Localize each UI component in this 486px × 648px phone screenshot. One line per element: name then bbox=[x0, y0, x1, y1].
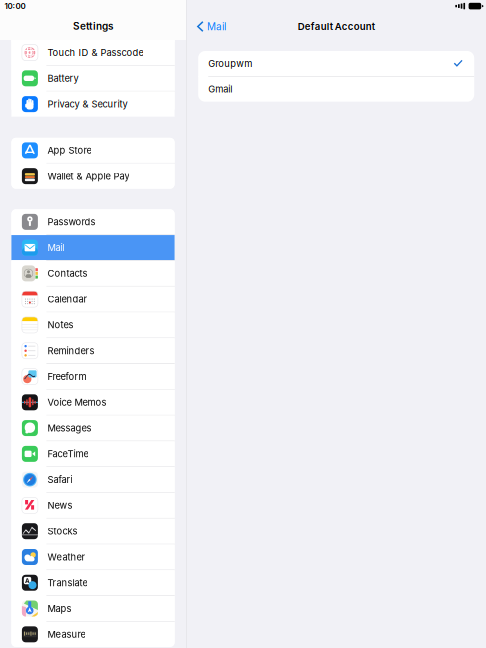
button[interactable]: Contacts bbox=[11, 261, 175, 286]
button[interactable]: Stocks bbox=[11, 519, 175, 544]
button[interactable]: Notes bbox=[11, 312, 175, 337]
staticText: Translate bbox=[47, 577, 87, 588]
staticText: Safari bbox=[47, 474, 72, 485]
staticText: Gmail bbox=[208, 84, 232, 95]
staticText: Battery bbox=[47, 73, 78, 84]
staticText: App Store bbox=[47, 145, 91, 156]
staticText: 10:00 bbox=[4, 1, 25, 11]
staticText: Reminders bbox=[47, 345, 94, 356]
button[interactable]: Passwords bbox=[11, 209, 175, 234]
staticText: FaceTime bbox=[47, 448, 88, 459]
button[interactable]: Touch ID & Passcode bbox=[11, 40, 175, 65]
staticText: Contacts bbox=[47, 268, 87, 279]
button[interactable]: Maps bbox=[11, 596, 175, 621]
button[interactable]: News bbox=[11, 493, 175, 518]
staticText: Passwords bbox=[47, 216, 95, 227]
staticText: Freeform bbox=[47, 371, 86, 382]
staticText: News bbox=[47, 500, 72, 511]
staticText: Maps bbox=[47, 603, 71, 614]
button[interactable]: Weather bbox=[11, 544, 175, 569]
button[interactable]: Measure bbox=[11, 622, 175, 647]
staticText: Mail bbox=[47, 242, 64, 253]
staticText: A bbox=[25, 576, 30, 585]
staticText: Privacy & Security bbox=[47, 98, 127, 110]
button[interactable]: Safari bbox=[11, 467, 175, 492]
button[interactable]: Mail bbox=[11, 235, 175, 260]
button[interactable]: Wallet & Apple Pay bbox=[11, 164, 175, 189]
button[interactable]: Gmail bbox=[198, 77, 474, 102]
staticText: Notes bbox=[47, 319, 73, 331]
button[interactable]: Messages bbox=[11, 415, 175, 441]
button[interactable]: Reminders bbox=[11, 338, 175, 363]
staticText: Calendar bbox=[47, 293, 87, 305]
staticText: Weather bbox=[47, 551, 85, 563]
button[interactable]: Battery bbox=[11, 66, 175, 91]
staticText: Settings bbox=[73, 20, 113, 32]
button[interactable]: FaceTime bbox=[11, 441, 175, 466]
staticText: Wallet & Apple Pay bbox=[47, 170, 129, 182]
button[interactable]: A bbox=[11, 570, 175, 595]
staticText: Messages bbox=[47, 422, 91, 434]
button[interactable]: Groupwm bbox=[198, 51, 474, 76]
staticText: Voice Memos bbox=[47, 397, 106, 408]
staticText: Groupwm bbox=[208, 58, 252, 69]
staticText: Default Account bbox=[298, 21, 375, 32]
staticText: Touch ID & Passcode bbox=[47, 47, 143, 58]
staticText: Measure bbox=[47, 629, 85, 640]
staticText: Mail bbox=[207, 20, 226, 33]
button[interactable]: Freeform bbox=[11, 364, 175, 389]
button[interactable]: Privacy & Security bbox=[11, 92, 175, 117]
button[interactable]: Voice Memos bbox=[11, 390, 175, 415]
button[interactable]: Mail bbox=[193, 17, 230, 35]
button[interactable]: App Store bbox=[11, 138, 175, 163]
staticText: Stocks bbox=[47, 526, 77, 537]
button[interactable]: Calendar bbox=[11, 287, 175, 312]
